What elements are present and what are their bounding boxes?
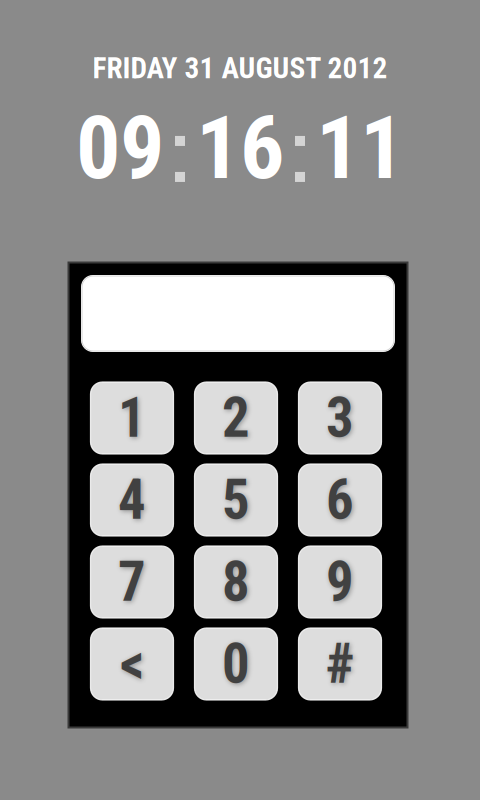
button[interactable]: 0 — [194, 628, 277, 700]
staticText: 1 — [118, 386, 146, 450]
button[interactable]: Entry field — [81, 275, 395, 352]
staticText: < — [120, 632, 144, 696]
button[interactable]: 4 — [90, 464, 173, 536]
button[interactable]: # — [298, 628, 381, 700]
staticText: 2 — [222, 386, 250, 450]
button[interactable]: 7 — [90, 546, 173, 618]
button[interactable]: 6 — [298, 464, 381, 536]
staticText: 5 — [222, 468, 250, 532]
staticText: 9 — [326, 550, 354, 614]
staticText: # — [325, 632, 354, 696]
button[interactable]: 2 — [194, 382, 277, 454]
button[interactable]: 8 — [194, 546, 277, 618]
staticText: FRIDAY 31 AUGUST 2012 — [92, 51, 387, 85]
button[interactable]: 1 — [90, 382, 173, 454]
staticText: 6 — [326, 468, 354, 532]
button[interactable]: 3 — [298, 382, 381, 454]
staticText: 7 — [118, 550, 146, 614]
staticText: 0 — [222, 632, 250, 696]
button[interactable]: 9 — [298, 546, 381, 618]
staticText: 09 — [76, 96, 164, 199]
staticText: 3 — [326, 386, 354, 450]
staticText: 11 — [316, 96, 404, 199]
staticText: 16 — [196, 96, 284, 199]
staticText: 4 — [118, 468, 146, 532]
staticText: 8 — [222, 550, 250, 614]
button[interactable]: < — [90, 628, 173, 700]
button[interactable]: 5 — [194, 464, 277, 536]
